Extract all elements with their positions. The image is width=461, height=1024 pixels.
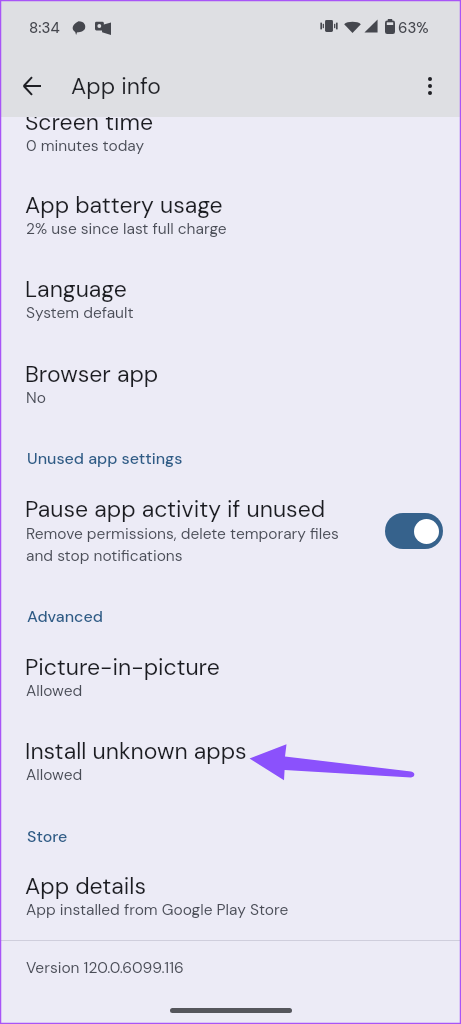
staticText: Screen time [25, 107, 154, 137]
staticText: System default [26, 303, 134, 323]
button[interactable] [0, 181, 461, 239]
button[interactable] [0, 485, 461, 567]
button[interactable] [0, 350, 461, 408]
staticText: 0 minutes today [26, 136, 145, 156]
staticText: App installed from Google Play Store [26, 900, 289, 920]
staticText: Advanced [27, 606, 103, 627]
staticText: App battery usage [25, 190, 223, 220]
button[interactable] [0, 265, 461, 323]
staticText: Remove permissions, delete temporary fil… [26, 524, 339, 544]
staticText: Browser app [25, 359, 159, 389]
button[interactable] [0, 727, 461, 785]
staticText: App details [25, 871, 147, 901]
button[interactable] [0, 862, 461, 920]
staticText: Pause app activity if unused [25, 494, 326, 524]
button[interactable]: Back [13, 67, 51, 105]
staticText: Unused app settings [27, 448, 183, 469]
button[interactable]: More options [411, 67, 449, 105]
button[interactable] [0, 643, 461, 701]
staticText: Version 120.0.6099.116 [26, 958, 184, 978]
staticText: Picture-in-picture [25, 652, 220, 682]
button[interactable] [0, 941, 461, 991]
staticText: 8:34 [29, 18, 60, 38]
staticText: No [26, 388, 46, 408]
staticText: Install unknown apps [25, 736, 247, 766]
staticText: Allowed [26, 681, 83, 701]
staticText: 2% use since last full charge [26, 219, 227, 239]
staticText: Allowed [26, 765, 83, 785]
staticText: 63% [398, 18, 429, 38]
staticText: Language [25, 274, 127, 304]
staticText: and stop notifications [26, 546, 183, 566]
button[interactable] [0, 98, 461, 156]
button[interactable]: Pause app activity if unused toggle [385, 513, 443, 549]
staticText: App info [71, 71, 161, 101]
staticText: Store [27, 826, 68, 847]
